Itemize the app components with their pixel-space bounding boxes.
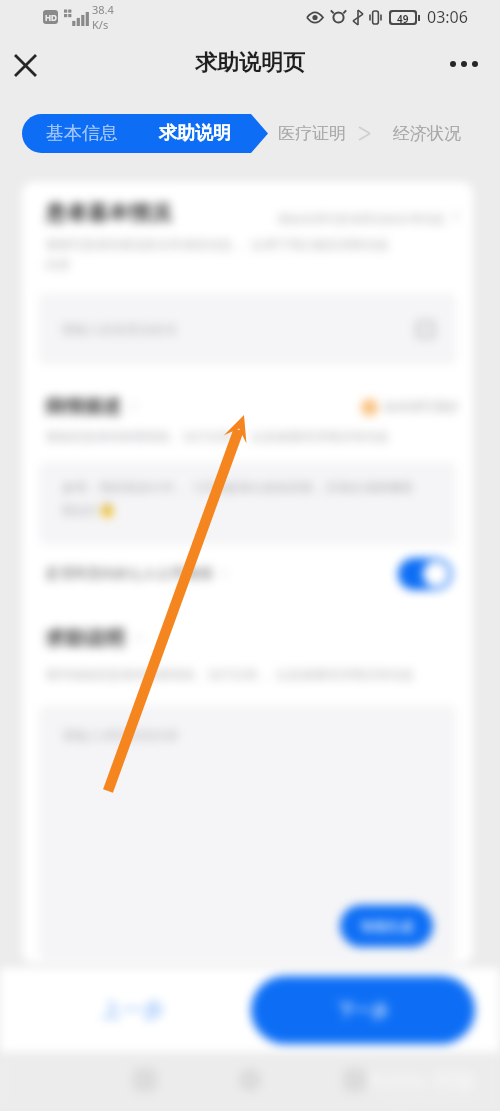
button[interactable]: More options (442, 42, 486, 86)
staticText: 请输入求助说明内容 (62, 727, 179, 743)
button[interactable]: Back (133, 1068, 157, 1092)
staticText: 求助说明 (45, 626, 125, 651)
staticText: 是否同意向好心人公开病情 (45, 565, 213, 583)
staticText: K/s (92, 17, 109, 32)
staticText: 03:06 (427, 6, 468, 28)
button[interactable]: Toggle public (398, 558, 452, 590)
staticText: 请输入患者真实姓名 (61, 321, 178, 337)
staticText: 请如实填写患者真实姓名等信息 (277, 211, 445, 226)
staticText: 求助说明 (159, 122, 231, 145)
staticText: 参考：我的母亲今年， 5月份被查出患有肝癌，目前在省肿瘤医 院治疗👶 (62, 479, 414, 518)
staticText: 38.4 (92, 2, 114, 17)
staticText: 病情描述 (45, 395, 121, 419)
staticText: HD (45, 12, 57, 23)
button[interactable]: Home (238, 1068, 262, 1092)
staticText: 请描述患者的病情现状、治疗过程， 以及家庭经济情况等信息 (45, 428, 390, 445)
button[interactable]: Close (5, 45, 45, 85)
staticText: 经济状况 (393, 123, 461, 144)
staticText: 基本信息 (46, 122, 118, 145)
button[interactable]: Recent apps (343, 1068, 367, 1092)
button[interactable]: 上一步 (92, 988, 172, 1032)
staticText: 医疗证明 (278, 123, 346, 144)
staticText: 求助说明页 (195, 49, 305, 77)
staticText: 如何填写更好 (384, 399, 459, 415)
staticText: 上一步 (101, 997, 164, 1023)
staticText: 患者基本情况 (45, 200, 171, 226)
button[interactable]: 下一步 (251, 976, 475, 1044)
staticText: 49 (397, 12, 409, 23)
staticText: 智能生成 (361, 918, 413, 934)
staticText: 下一步 (338, 1000, 389, 1021)
button[interactable]: 请输入患者真实姓名 (39, 293, 456, 365)
staticText: 请填写患者的真实姓名和身份信息， 以便于我们核实求助信息 内容 (45, 236, 390, 273)
button[interactable]: 智能生成 (340, 905, 433, 947)
staticText: 请详细描述患者的病情现状、治疗过程， 以及家庭经济情况等信息 (45, 666, 415, 683)
